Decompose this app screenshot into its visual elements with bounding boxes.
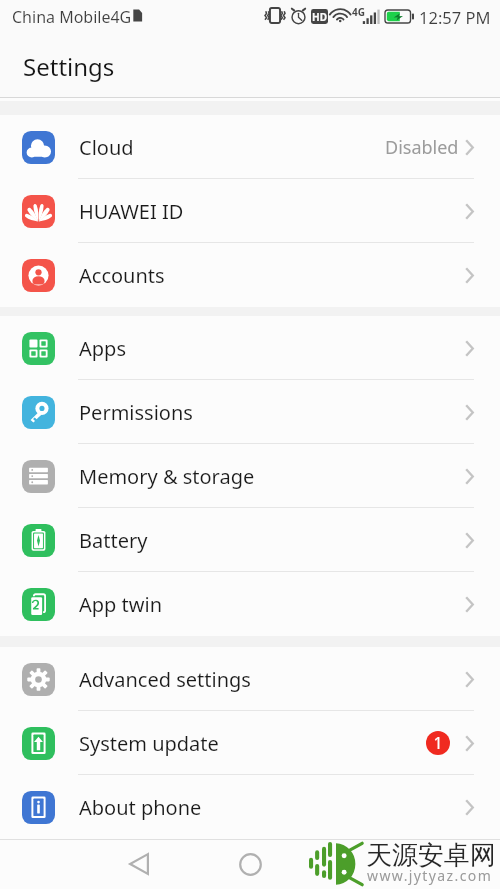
staticText: HD bbox=[312, 10, 327, 24]
button[interactable]: Cloud bbox=[0, 115, 500, 179]
staticText: System update bbox=[79, 730, 219, 757]
staticText: Memory & storage bbox=[79, 463, 255, 490]
staticText: HUAWEI ID bbox=[79, 198, 184, 225]
staticText: 1 bbox=[433, 732, 443, 754]
staticText: Advanced settings bbox=[79, 666, 251, 693]
button[interactable]: System update bbox=[0, 711, 500, 775]
staticText: 天源安卓网 bbox=[366, 839, 496, 872]
button[interactable]: Memory & storage bbox=[0, 444, 500, 508]
staticText: China Mobile4G bbox=[12, 6, 132, 28]
button[interactable]: About phone bbox=[0, 775, 500, 839]
staticText: Battery bbox=[79, 527, 148, 554]
staticText: Apps bbox=[79, 335, 126, 362]
staticText: Permissions bbox=[79, 399, 193, 426]
button[interactable]: Home bbox=[230, 844, 270, 884]
button[interactable]: Permissions bbox=[0, 380, 500, 444]
button[interactable]: Back bbox=[119, 844, 159, 884]
staticText: Disabled bbox=[385, 135, 459, 160]
button[interactable]: HUAWEI ID bbox=[0, 179, 500, 243]
button[interactable]: App twin bbox=[0, 572, 500, 636]
button[interactable]: Accounts bbox=[0, 243, 500, 307]
staticText: Settings bbox=[23, 50, 115, 83]
staticText: Accounts bbox=[79, 262, 165, 289]
staticText: Cloud bbox=[79, 134, 134, 161]
staticText: App twin bbox=[79, 591, 163, 618]
staticText: 12:57 PM bbox=[419, 6, 491, 28]
staticText: 4G bbox=[352, 5, 365, 19]
button[interactable]: Advanced settings bbox=[0, 647, 500, 711]
button[interactable]: Apps bbox=[0, 316, 500, 380]
button[interactable]: Battery bbox=[0, 508, 500, 572]
staticText: www.jytyaz.com bbox=[367, 866, 493, 885]
staticText: About phone bbox=[79, 794, 202, 821]
